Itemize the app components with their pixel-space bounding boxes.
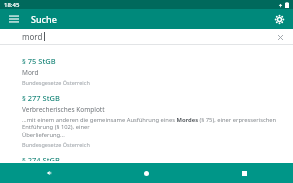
- staticText: § 277 StGB: [22, 93, 60, 103]
- staticText: Überlieferung...: [22, 131, 65, 139]
- button[interactable]: Open navigation menu: [6, 11, 22, 27]
- button[interactable]: Clear search: [274, 31, 286, 43]
- staticText: Mord: [22, 68, 39, 77]
- button[interactable]: Home: [97, 163, 195, 183]
- button[interactable]: § 277 StGB: [0, 88, 293, 150]
- button[interactable]: § 274 StGB: [0, 150, 293, 163]
- button[interactable]: § 75 StGB: [0, 51, 293, 88]
- staticText: Verbrecherisches Komplott: [22, 105, 105, 114]
- staticText: mord: [22, 31, 43, 42]
- staticText: § 75 StGB: [22, 56, 56, 66]
- staticText: Bundesgesetze Österreich: [22, 79, 90, 86]
- staticText: 18:45: [4, 1, 20, 9]
- button[interactable]: Back: [0, 163, 97, 183]
- staticText: § 274 StGB: [22, 155, 60, 161]
- staticText: ...mit einem anderen die gemeinsame Ausf…: [22, 116, 285, 131]
- staticText: Bundesgesetze Österreich: [22, 141, 90, 148]
- button[interactable]: Recent apps: [195, 163, 293, 183]
- staticText: Suche: [31, 13, 57, 25]
- button[interactable]: Settings: [271, 11, 287, 27]
- button[interactable]: mord: [0, 29, 293, 44]
